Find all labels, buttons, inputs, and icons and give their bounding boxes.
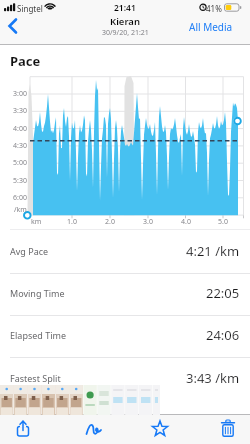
staticText: 4:30 [13,141,27,151]
staticText: 24:06 [206,326,240,344]
staticText: /km [14,205,27,215]
button[interactable] [83,385,96,415]
staticText: 2.0 [105,217,115,227]
staticText: Moving Time [10,287,65,299]
staticText: Pace [10,52,41,70]
staticText: 41% [206,3,222,14]
button[interactable]: Fastest Split [0,363,250,393]
staticText: 5:30 [13,176,27,186]
staticText: 3:30 [13,106,27,116]
staticText: Kieran [110,15,140,28]
button[interactable] [42,385,55,415]
staticText: 3:00 [13,89,27,99]
button[interactable] [139,385,152,415]
button[interactable] [5,414,41,444]
staticText: 4:00 [13,124,27,134]
button[interactable] [97,385,110,415]
button[interactable] [70,385,83,415]
staticText: Elapsed Time [10,329,66,341]
staticText: 1.0 [67,217,77,227]
staticText: 4.0 [181,217,191,227]
button[interactable] [76,414,112,444]
staticText: 21:41 [114,2,136,14]
button[interactable] [0,385,13,415]
staticText: Avg Pace [10,245,49,257]
staticText: Fastest Split [10,372,61,384]
button[interactable] [210,414,246,444]
button[interactable]: Elapsed Time [0,320,250,350]
staticText: All Media [189,20,233,34]
staticText: 22:05 [206,284,240,302]
button[interactable]: Avg Pace [0,236,250,266]
staticText: 3.0 [143,217,153,227]
staticText: km [31,217,42,227]
staticText: 5:00 [13,158,27,168]
staticText: 6:00 [13,193,27,203]
button[interactable] [56,385,69,415]
button[interactable] [125,385,138,415]
button[interactable] [14,385,27,415]
button[interactable]: Moving Time [0,278,250,308]
button[interactable] [0,14,30,40]
staticText: 5.0 [218,217,228,227]
button[interactable] [111,385,124,415]
button[interactable] [185,16,245,38]
button[interactable] [142,414,178,444]
staticText: 30/9/20, 21:21 [102,28,149,38]
staticText: 3:43 /km [186,369,240,387]
button[interactable] [28,385,41,415]
staticText: 4:21 /km [186,242,240,260]
staticText: Singtel [17,3,43,14]
